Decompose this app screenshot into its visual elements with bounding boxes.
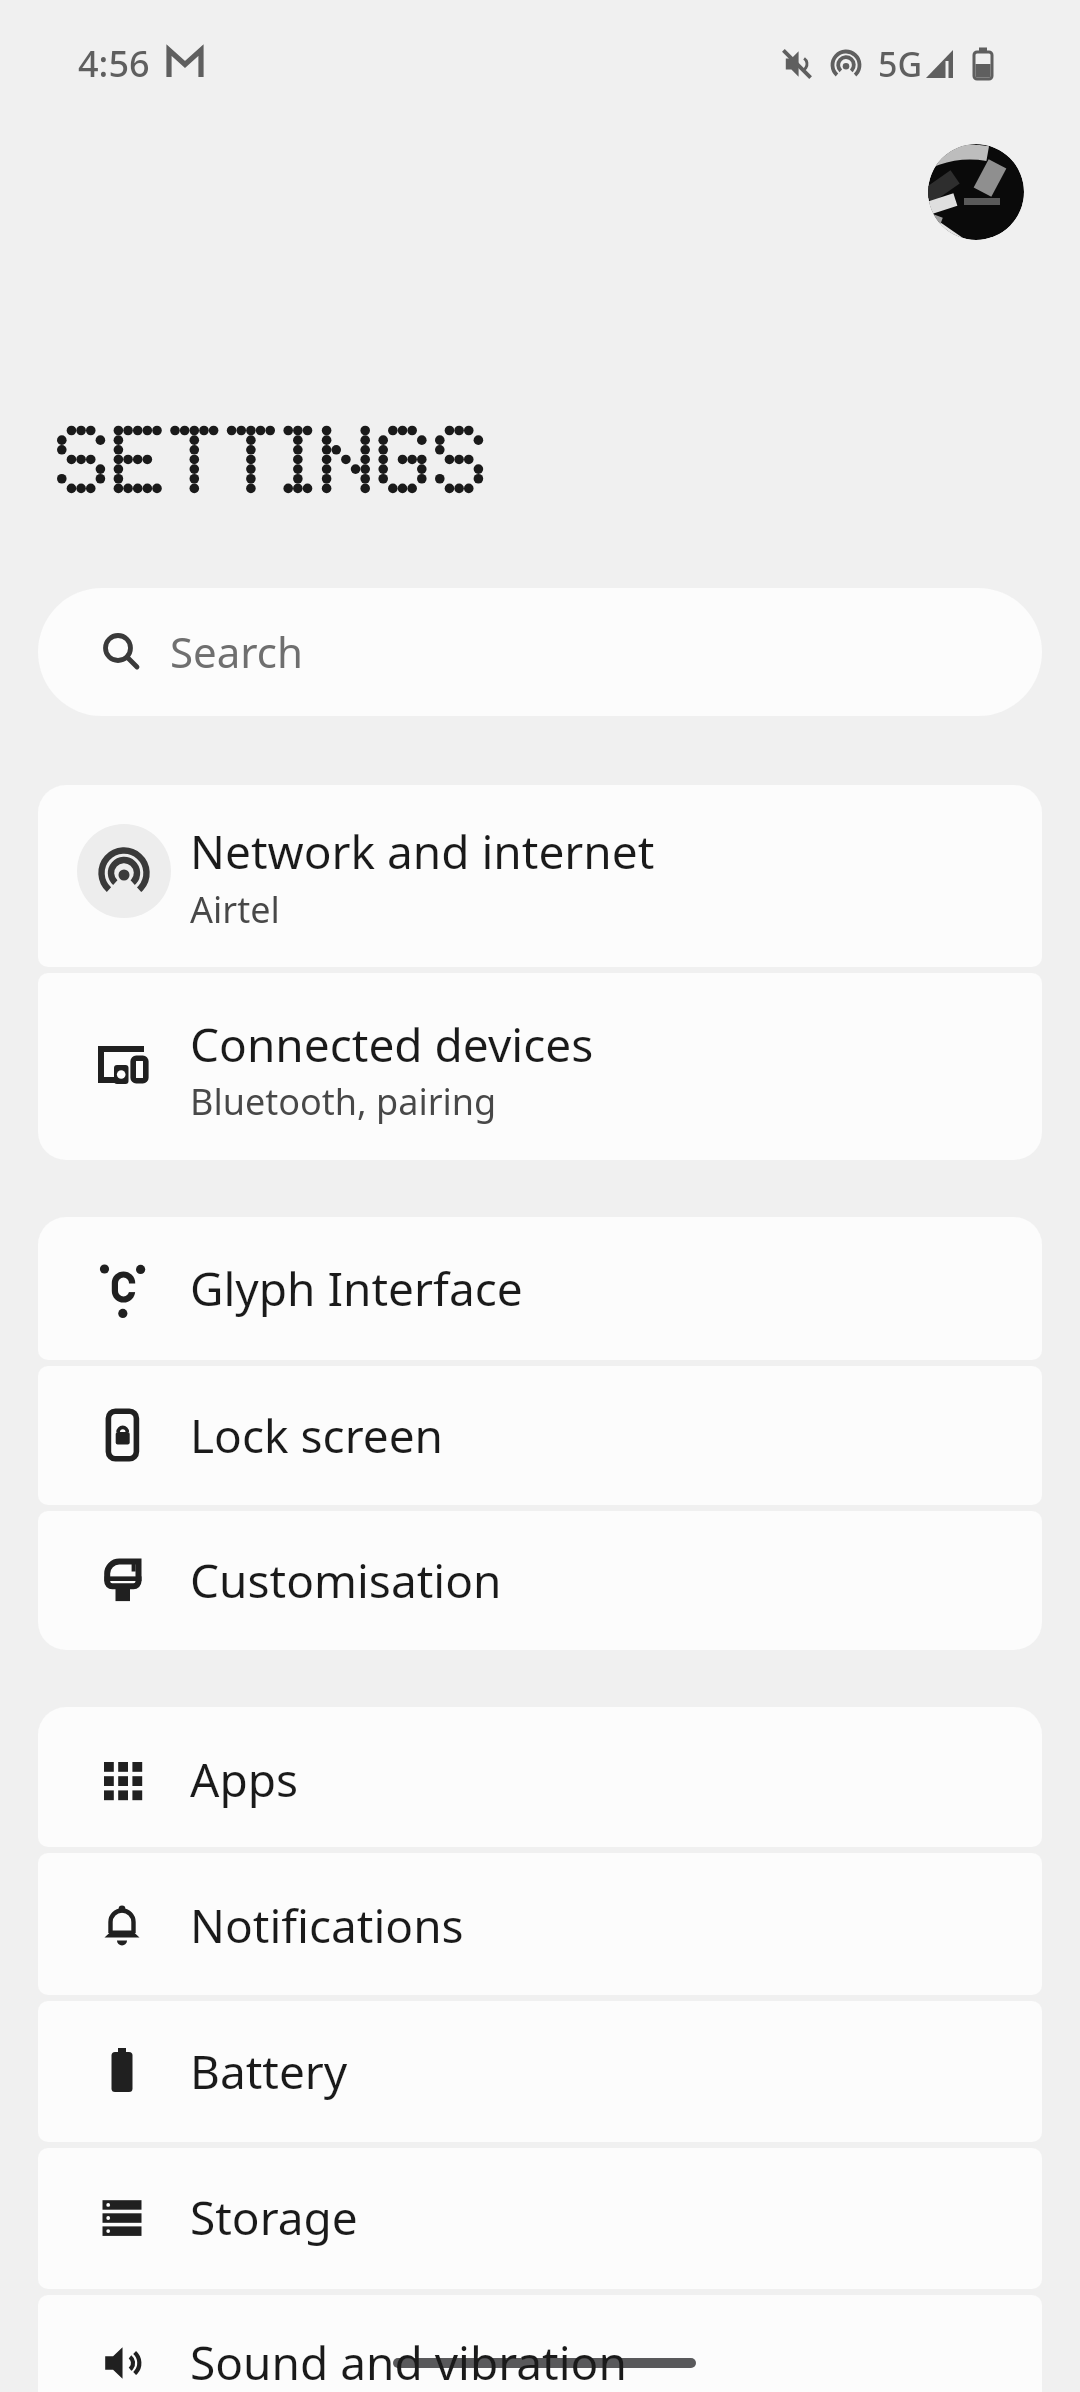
- staticText: Sound and vibration: [190, 2331, 627, 2392]
- staticText: 4:56: [78, 39, 150, 88]
- button[interactable]: [38, 2148, 1042, 2289]
- staticText: Storage: [190, 2186, 358, 2249]
- staticText: Bluetooth, pairing: [190, 1077, 497, 1126]
- button[interactable]: [38, 973, 1042, 1160]
- staticText: Customisation: [190, 1549, 502, 1612]
- staticText: Search: [170, 623, 303, 680]
- staticText: Glyph Interface: [190, 1257, 523, 1320]
- button[interactable]: [928, 144, 1024, 240]
- staticText: Connected devices: [190, 1013, 594, 1076]
- button[interactable]: [38, 1366, 1042, 1505]
- button[interactable]: [38, 1511, 1042, 1650]
- button[interactable]: [38, 1217, 1042, 1360]
- staticText: Airtel: [190, 885, 280, 934]
- button[interactable]: [38, 1853, 1042, 1995]
- button[interactable]: [38, 1707, 1042, 1847]
- staticText: Network and internet: [190, 820, 655, 883]
- button[interactable]: [38, 785, 1042, 967]
- staticText: Lock screen: [190, 1404, 444, 1467]
- staticText: Notifications: [190, 1894, 464, 1957]
- button[interactable]: [38, 588, 1042, 716]
- button[interactable]: [38, 2001, 1042, 2142]
- staticText: Apps: [190, 1748, 299, 1811]
- staticText: Battery: [190, 2040, 348, 2103]
- button[interactable]: [38, 2295, 1042, 2392]
- staticText: 5G: [878, 41, 923, 87]
